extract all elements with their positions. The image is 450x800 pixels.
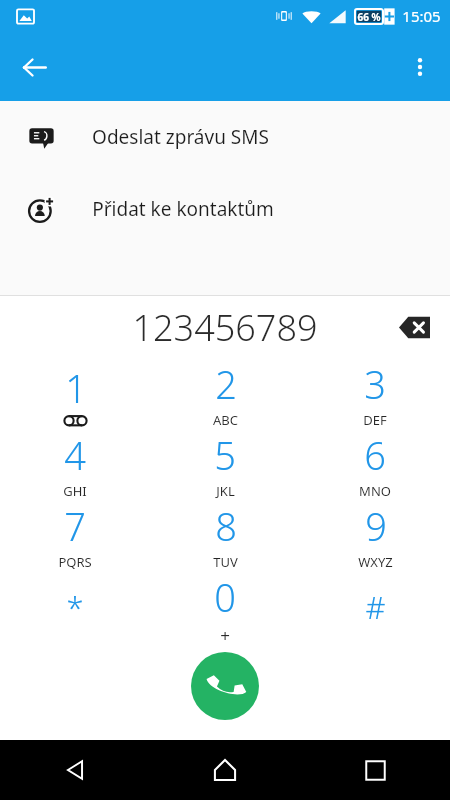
- button[interactable]: Odeslat zprávu SMS: [0, 101, 450, 173]
- button[interactable]: 123456789: [132, 303, 318, 352]
- staticText: 2: [215, 358, 237, 410]
- button[interactable]: Backspace: [390, 303, 438, 351]
- staticText: GHI: [63, 482, 87, 500]
- button[interactable]: *: [0, 571, 150, 642]
- staticText: WXYZ: [358, 553, 393, 571]
- button[interactable]: 4: [0, 429, 150, 500]
- button[interactable]: 1: [0, 358, 150, 429]
- staticText: 4: [64, 429, 86, 481]
- button[interactable]: Home: [150, 740, 300, 800]
- staticText: 123456789: [132, 303, 318, 352]
- button[interactable]: 0: [150, 571, 300, 642]
- staticText: *: [66, 586, 84, 628]
- button[interactable]: 8: [150, 500, 300, 571]
- button[interactable]: 2: [150, 358, 300, 429]
- staticText: JKL: [216, 482, 235, 500]
- button[interactable]: Back: [8, 41, 60, 93]
- staticText: 1: [65, 362, 87, 414]
- staticText: MNO: [359, 482, 391, 500]
- staticText: 0: [214, 571, 236, 623]
- staticText: Odeslat zprávu SMS: [92, 124, 269, 150]
- button[interactable]: #: [300, 571, 450, 642]
- button[interactable]: Call: [191, 652, 259, 720]
- staticText: 5: [214, 429, 236, 481]
- staticText: 3: [364, 358, 386, 410]
- button[interactable]: Přidat ke kontaktům: [0, 173, 450, 245]
- button[interactable]: 3: [300, 358, 450, 429]
- staticText: #: [365, 586, 386, 628]
- staticText: Přidat ke kontaktům: [92, 196, 274, 222]
- button[interactable]: 5: [150, 429, 300, 500]
- button[interactable]: 9: [300, 500, 450, 571]
- staticText: TUV: [213, 553, 238, 571]
- button[interactable]: 6: [300, 429, 450, 500]
- staticText: 9: [365, 500, 387, 552]
- staticText: PQRS: [58, 553, 92, 571]
- button[interactable]: More options: [396, 43, 444, 91]
- staticText: 8: [215, 500, 237, 552]
- staticText: DEF: [363, 411, 387, 429]
- staticText: 66 %: [357, 10, 381, 24]
- button[interactable]: Back: [0, 740, 150, 800]
- staticText: 6: [364, 429, 386, 481]
- staticText: 7: [64, 500, 86, 552]
- staticText: +: [220, 624, 230, 642]
- staticText: ABC: [213, 411, 238, 429]
- button[interactable]: 7: [0, 500, 150, 571]
- button[interactable]: Recent apps: [300, 740, 450, 800]
- staticText: 15:05: [402, 6, 441, 26]
